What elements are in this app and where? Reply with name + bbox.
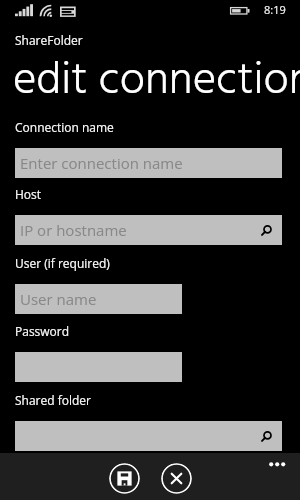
staticText: User name [20,289,97,309]
staticText: Connection name [15,119,114,135]
staticText: ShareFolder [15,32,83,48]
button[interactable]: IP or hostname [15,215,282,245]
button[interactable]: Enter connection name [15,148,282,178]
staticText: User (if required) [15,255,110,271]
button[interactable]: Save [109,463,140,494]
staticText: Host [15,186,42,202]
staticText: Password [15,323,70,339]
button[interactable]: Cancel [161,463,192,494]
staticText: Enter connection name [20,153,183,173]
staticText: IP or hostname [20,220,127,240]
staticText: Shared folder [15,392,91,408]
staticText: edit connection [13,46,300,118]
button[interactable]: More options [261,456,293,476]
button[interactable] [15,421,282,451]
button[interactable]: User name [15,284,182,314]
staticText: 8:19 [264,2,286,17]
